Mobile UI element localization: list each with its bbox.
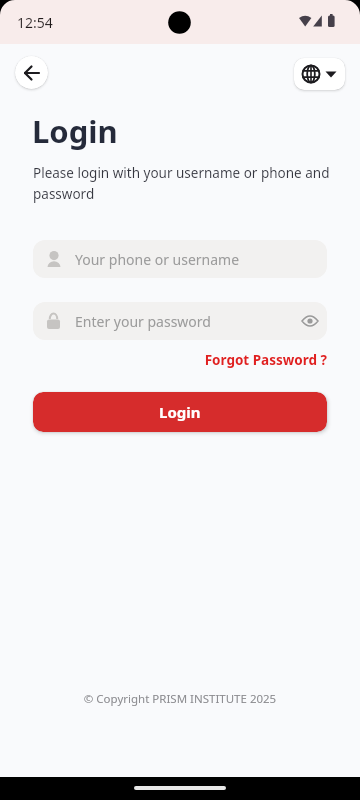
staticText: Login (159, 402, 201, 422)
button[interactable]: Login (33, 392, 327, 432)
button[interactable]: Your phone or username (33, 240, 327, 278)
staticText: 12:54 (17, 13, 53, 32)
staticText: Please login with your username or phone… (33, 164, 330, 203)
staticText: Login (32, 110, 118, 152)
staticText: © Copyright PRISM INSTITUTE 2025 (0, 691, 360, 707)
button[interactable]: Forgot Password ? (0, 351, 327, 369)
button[interactable]: Enter your password (33, 302, 327, 340)
button[interactable] (294, 58, 345, 90)
staticText: Enter your password (75, 312, 211, 331)
button[interactable] (15, 56, 48, 89)
staticText: Your phone or username (75, 250, 240, 269)
